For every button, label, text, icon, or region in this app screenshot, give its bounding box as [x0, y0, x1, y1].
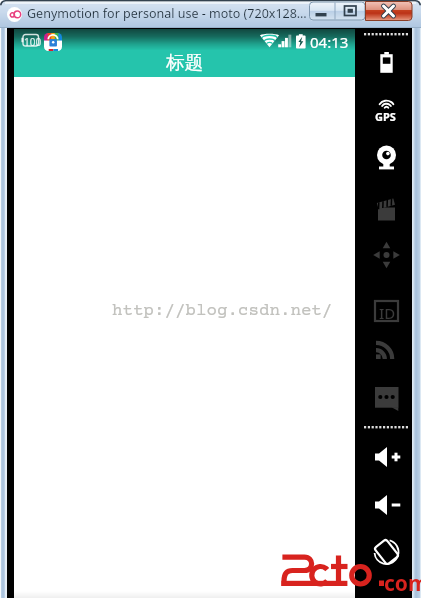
- staticText: Genymotion for personal use - moto (720x…: [27, 5, 307, 22]
- button[interactable]: Genymotion icon: [7, 7, 22, 22]
- staticText: 100: [24, 35, 42, 49]
- staticText: GPS: [375, 109, 396, 124]
- staticText: ID: [379, 303, 396, 323]
- button[interactable]: Minimize: [309, 1, 335, 21]
- staticText: 04:13: [310, 32, 349, 52]
- staticText: http://blog.csdn.net/: [112, 301, 333, 321]
- button[interactable]: Close: [366, 1, 412, 21]
- button[interactable]: 标题: [14, 48, 355, 76]
- button[interactable]: Maximize: [335, 1, 366, 21]
- staticText: com: [384, 569, 421, 598]
- staticText: 标题: [166, 51, 203, 74]
